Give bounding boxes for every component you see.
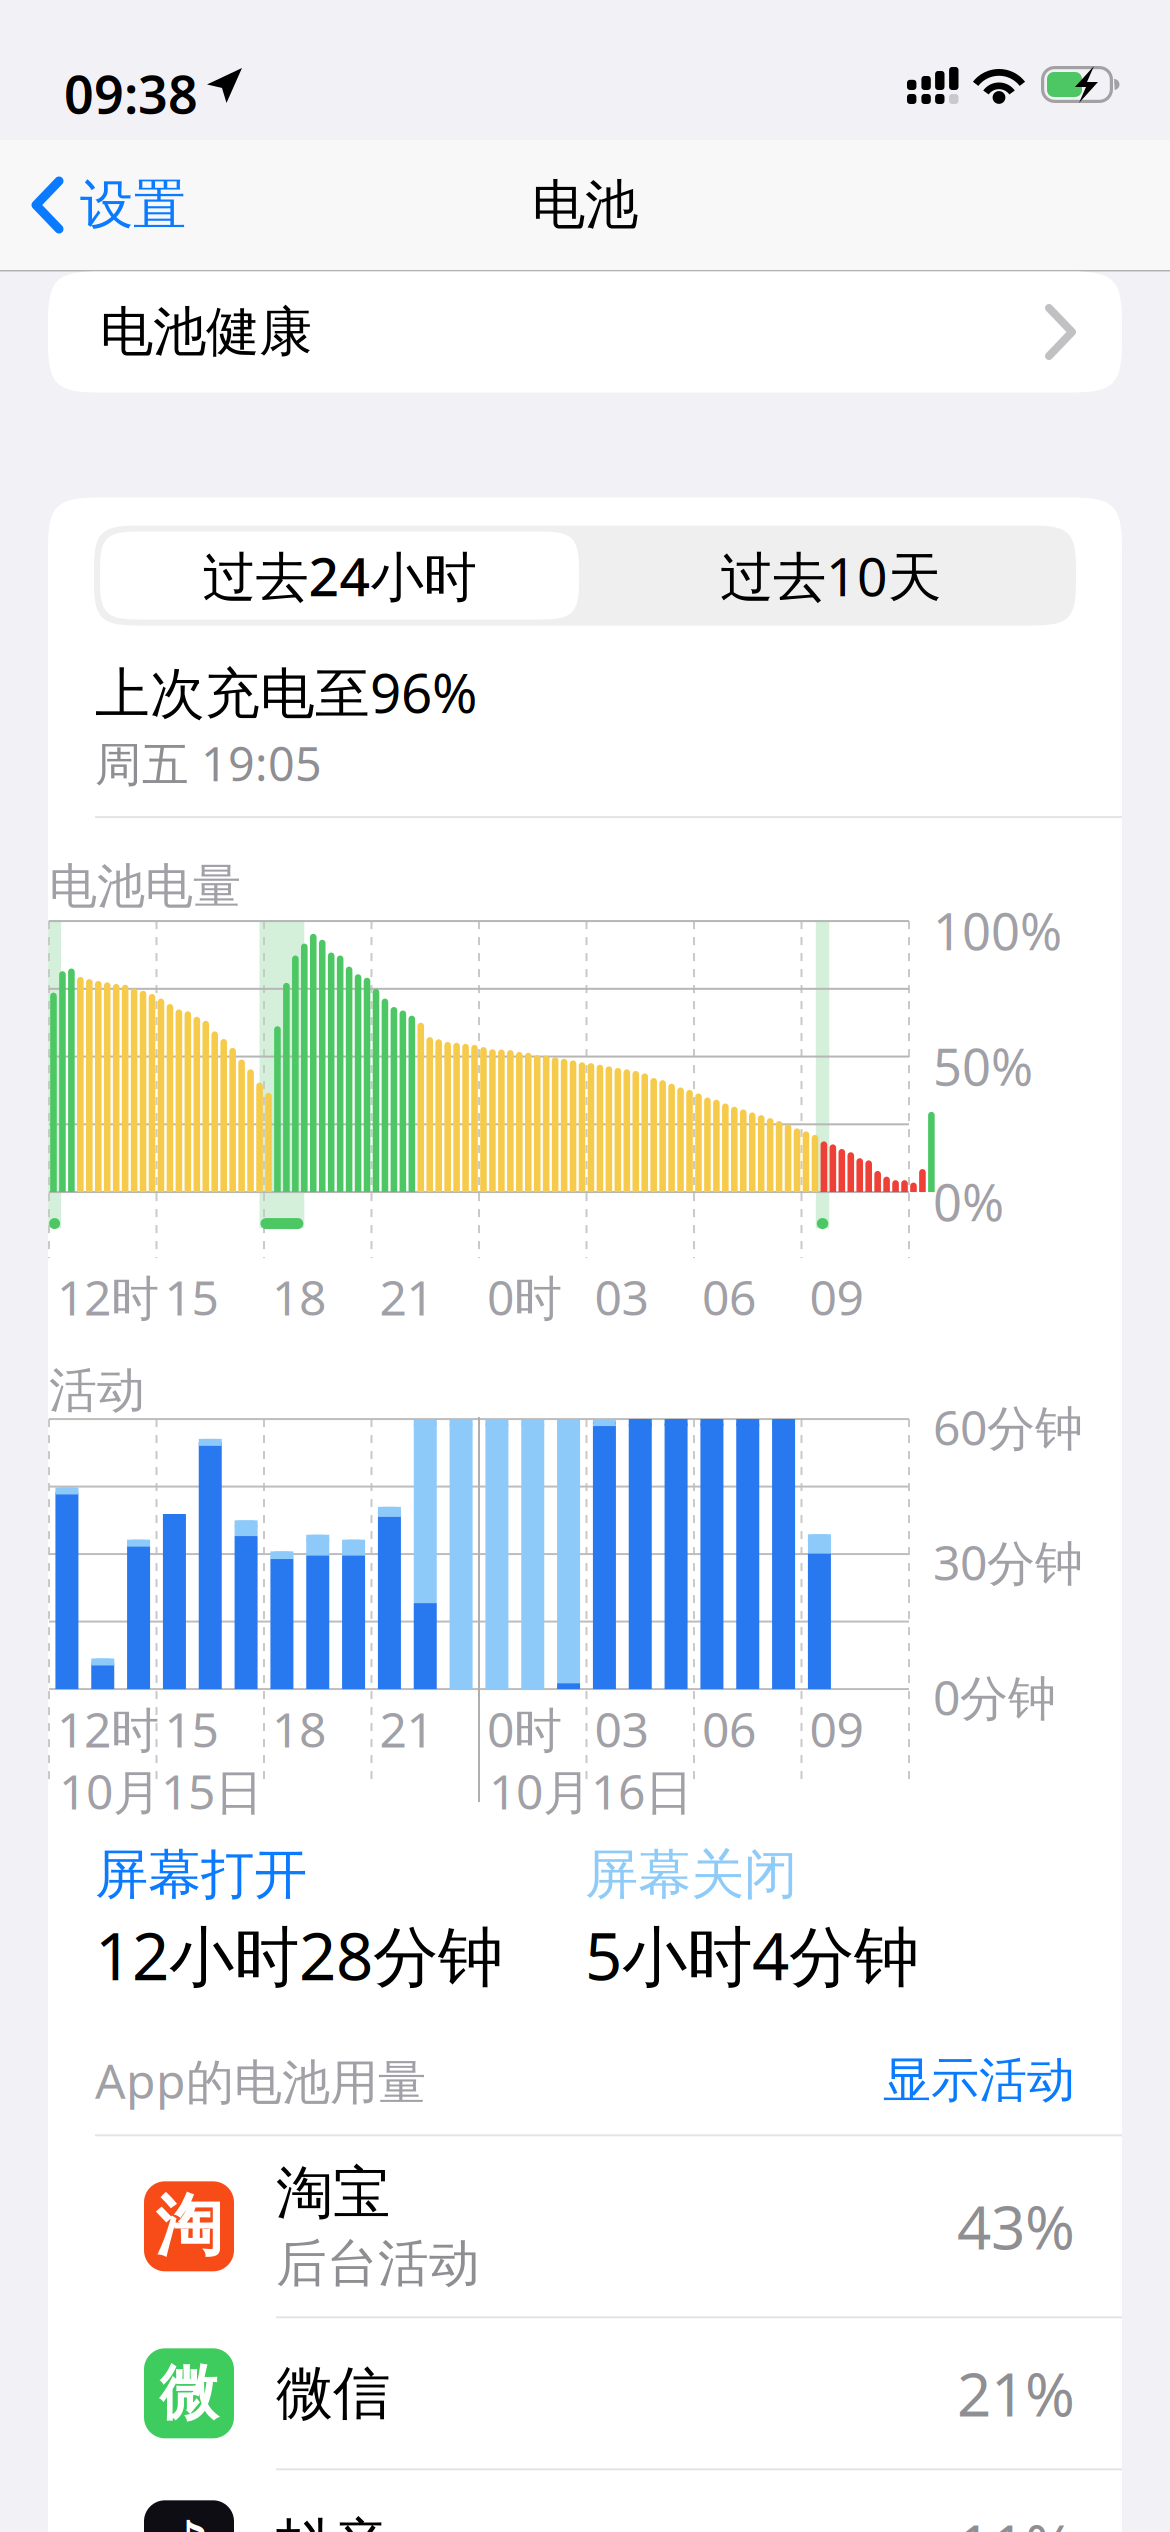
staticText: 微信 — [276, 2358, 390, 2428]
staticText: 10月15日 — [59, 1759, 263, 1823]
button[interactable]: 过去24小时 — [94, 525, 585, 625]
staticText: 显示活动 — [883, 2051, 1075, 2110]
staticText: 15 — [164, 1697, 218, 1761]
staticText: 21% — [957, 2353, 1075, 2433]
button[interactable]: 微 — [48, 2318, 1122, 2468]
staticText: 03 — [594, 1697, 648, 1761]
staticText: 30分钟 — [933, 1530, 1083, 1594]
staticText: 0时 — [487, 1697, 562, 1761]
staticText: 100% — [933, 897, 1062, 964]
staticText: 上次充电至96% — [95, 655, 477, 728]
staticText: 抖音 — [276, 2510, 390, 2532]
staticText: 15 — [164, 1265, 218, 1329]
staticText: 18 — [272, 1697, 326, 1761]
button[interactable]: 显示活动 — [883, 2051, 1075, 2110]
staticText: 50% — [933, 1033, 1033, 1100]
staticText: 12时 — [57, 1697, 159, 1761]
staticText: 21 — [379, 1265, 433, 1329]
button[interactable]: 设置 — [0, 154, 186, 256]
staticText: 0时 — [487, 1265, 562, 1329]
staticText: 12时 — [57, 1265, 159, 1329]
staticText: 活动 — [49, 1361, 145, 1420]
staticText: 0分钟 — [933, 1665, 1056, 1729]
staticText: 06 — [702, 1697, 756, 1761]
button[interactable]: ♪ — [48, 2470, 1122, 2532]
staticText: 12小时28分钟 — [95, 1912, 503, 1998]
staticText: 电池 — [532, 172, 638, 238]
staticText: ♪ — [167, 2507, 210, 2532]
staticText: 09 — [809, 1265, 863, 1329]
staticText: 43% — [957, 2186, 1075, 2266]
staticText: 10月16日 — [489, 1759, 693, 1823]
staticText: 11% — [957, 2505, 1075, 2532]
staticText: 后台活动 — [276, 2232, 480, 2295]
staticText: 电池健康 — [100, 299, 312, 365]
staticText: 03 — [594, 1265, 648, 1329]
staticText: 09 — [809, 1697, 863, 1761]
staticText: 电池电量 — [49, 857, 241, 916]
button[interactable]: 过去10天 — [585, 525, 1076, 625]
button[interactable]: 淘 — [48, 2136, 1122, 2316]
staticText: 设置 — [80, 172, 186, 238]
staticText: 21 — [379, 1697, 433, 1761]
staticText: 0% — [933, 1168, 1004, 1235]
staticText: 60分钟 — [933, 1395, 1083, 1459]
staticText: 06 — [702, 1265, 756, 1329]
staticText: 过去24小时 — [202, 540, 476, 611]
staticText: 淘宝 — [276, 2158, 390, 2228]
staticText: 周五 19:05 — [95, 732, 322, 794]
staticText: 09:38 — [64, 59, 198, 128]
staticText: 屏幕关闭 — [585, 1842, 797, 1908]
button[interactable]: 电池健康 — [0, 271, 1170, 392]
staticText: 5小时4分钟 — [585, 1912, 919, 1998]
staticText: 淘 — [155, 2185, 222, 2267]
staticText: 屏幕打开 — [95, 1842, 307, 1908]
staticText: 18 — [272, 1265, 326, 1329]
staticText: 过去10天 — [720, 540, 941, 611]
staticText: 微 — [159, 2357, 218, 2429]
staticText: App的电池用量 — [95, 2048, 426, 2112]
